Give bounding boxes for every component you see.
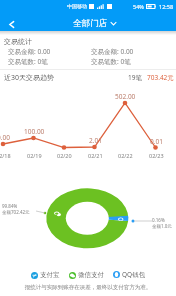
button[interactable]: 全部门店 bbox=[71, 15, 118, 32]
staticText: 微信支付 bbox=[78, 271, 104, 279]
button[interactable]: 支付宝 bbox=[31, 271, 60, 279]
staticText: 0.16% bbox=[152, 217, 165, 223]
staticText: 中国移动 bbox=[67, 3, 87, 9]
staticText: 交易金额: 0.00 bbox=[91, 47, 134, 56]
staticText: 支付宝 bbox=[40, 271, 60, 279]
staticText: 交易统计 bbox=[4, 37, 32, 46]
staticText: 全部门店 bbox=[73, 18, 108, 29]
button[interactable]: 微信支付 bbox=[69, 271, 104, 279]
staticText: 交易金额: 0.00 bbox=[8, 47, 51, 56]
staticText: QQ钱包 bbox=[122, 270, 146, 279]
staticText: 金额702.42元 bbox=[2, 209, 30, 215]
staticText: 0.01 bbox=[150, 137, 163, 146]
staticText: 502.00 bbox=[115, 92, 136, 101]
staticText: 54% bbox=[133, 3, 144, 10]
staticText: 报统计与实际到账存在误差，最终以支付官方为准。 bbox=[0, 284, 176, 291]
staticText: 金额1.0元 bbox=[152, 223, 172, 229]
staticText: 703.42元 bbox=[147, 73, 174, 82]
staticText: 12:58 bbox=[159, 3, 174, 10]
staticText: 99.84% bbox=[2, 203, 18, 209]
button[interactable]: Back bbox=[2, 13, 20, 31]
staticText: 02/22 bbox=[118, 152, 133, 159]
staticText: 近30天交易趋势 bbox=[4, 73, 55, 83]
staticText: 0.00 bbox=[0, 133, 10, 142]
staticText: 交易笔数: 0笔 bbox=[91, 57, 131, 66]
staticText: 02/23 bbox=[149, 152, 164, 159]
staticText: 02/20 bbox=[57, 152, 72, 159]
staticText: 100.00 bbox=[24, 127, 45, 136]
staticText: 19笔 bbox=[128, 73, 142, 82]
button[interactable]: QQ钱包 bbox=[113, 270, 146, 279]
staticText: 02/21 bbox=[88, 152, 103, 159]
staticText: 02/19 bbox=[27, 152, 42, 159]
staticText: 2.01 bbox=[89, 136, 102, 145]
staticText: 交易笔数: 0笔 bbox=[8, 57, 48, 66]
staticText: 02/18 bbox=[0, 152, 11, 159]
